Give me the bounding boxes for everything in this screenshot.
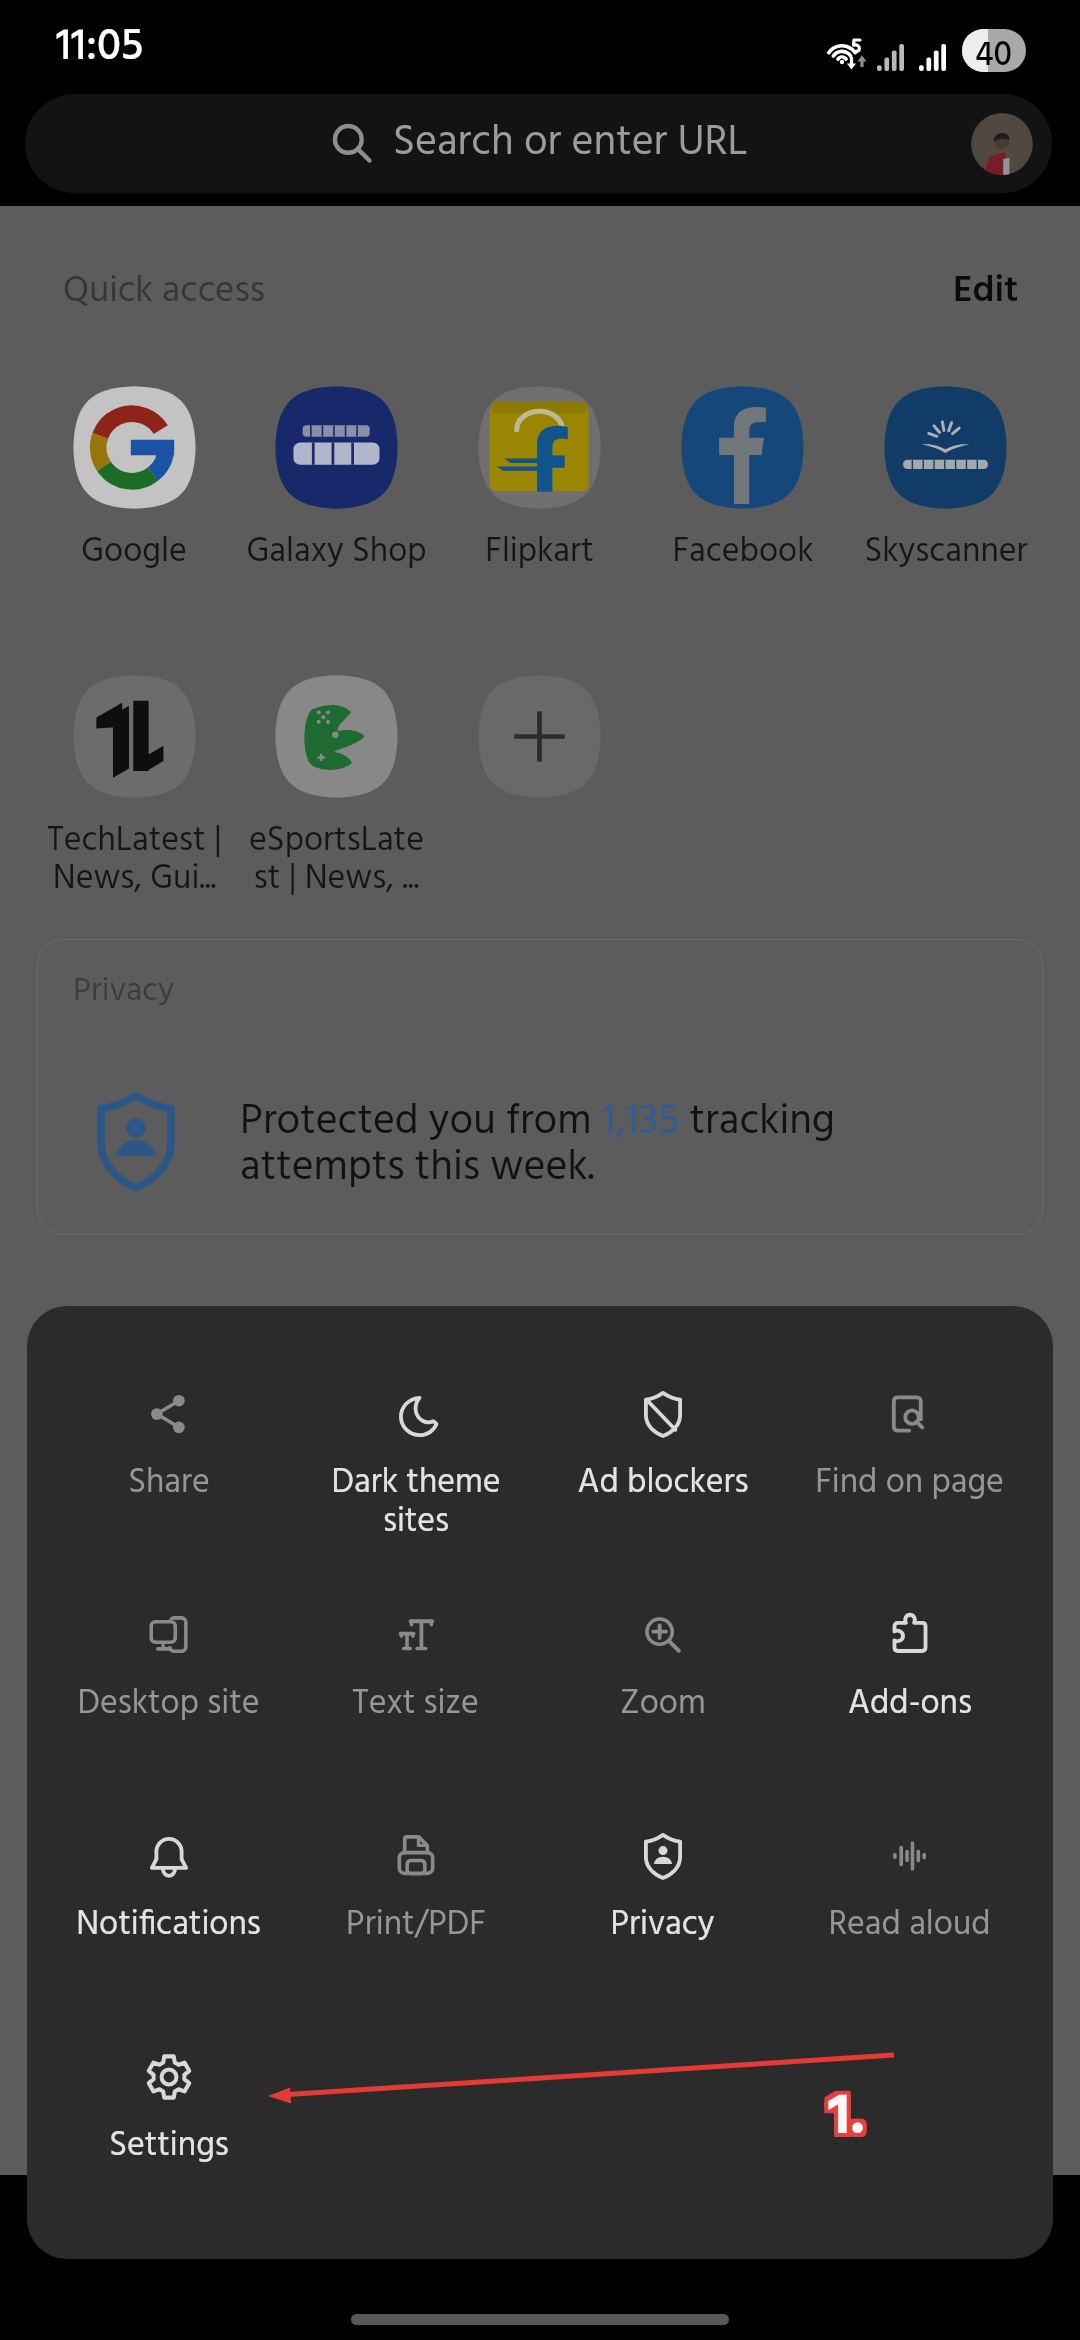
staticText: 1. — [832, 2070, 870, 2163]
staticText: Skyscanner — [864, 525, 1028, 579]
button[interactable] — [438, 675, 641, 868]
button[interactable]: Print/PDF — [292, 1829, 539, 1952]
button[interactable]: Settings — [45, 2050, 292, 2173]
staticText: Find on page — [815, 1456, 1004, 1510]
staticText: Galaxy Shop — [246, 525, 427, 579]
staticText: 40 — [975, 29, 1013, 72]
button[interactable]: Add-ons — [786, 1608, 1033, 1731]
button[interactable]: Read aloud — [786, 1829, 1033, 1952]
staticText: 1. — [832, 2072, 870, 2165]
staticText: Privacy — [610, 1898, 715, 1952]
button[interactable]: Privacy — [539, 1829, 786, 1952]
button[interactable]: Text size — [292, 1608, 539, 1731]
staticText: Flipkart — [485, 525, 594, 579]
staticText: Google — [81, 525, 187, 579]
staticText: Search or enter URL — [393, 110, 748, 177]
button[interactable]: Zoom — [539, 1608, 786, 1731]
button[interactable]: Desktop site — [45, 1608, 292, 1731]
button[interactable]: Galaxy Shop — [235, 386, 438, 579]
staticText: Zoom — [620, 1677, 706, 1731]
staticText: Facebook — [672, 525, 814, 579]
staticText: 1. — [828, 2072, 866, 2165]
staticText: 1. — [828, 2074, 866, 2167]
button[interactable]: Privacy — [37, 939, 1043, 1235]
button[interactable]: Dark theme sites — [292, 1387, 539, 1549]
staticText: 1. — [830, 2074, 868, 2167]
staticText: 1. — [830, 2072, 868, 2165]
staticText: 1. — [828, 2068, 866, 2161]
staticText: Desktop site — [77, 1677, 260, 1731]
button[interactable]: Edit — [953, 262, 1019, 321]
staticText: 1. — [830, 2068, 868, 2161]
staticText: Dark theme sites — [331, 1456, 501, 1549]
staticText: Privacy — [73, 965, 175, 1018]
staticText: 11:05 — [56, 13, 144, 83]
staticText: Read aloud — [828, 1898, 991, 1952]
staticText: 1. — [824, 2070, 862, 2163]
staticText: 1. — [832, 2076, 870, 2169]
staticText: Print/PDF — [346, 1898, 486, 1952]
button[interactable]: Flipkart — [438, 386, 641, 579]
button[interactable]: Search or enter URL — [25, 94, 1052, 193]
staticText: Quick access — [63, 262, 265, 321]
staticText: 1. — [824, 2072, 862, 2165]
staticText: Add-ons — [848, 1677, 972, 1731]
staticText: 1. — [826, 2070, 864, 2163]
staticText: 1. — [828, 2070, 866, 2163]
button[interactable]: Find on page — [786, 1387, 1033, 1510]
staticText: 1. — [828, 2076, 866, 2169]
staticText: Settings — [109, 2119, 229, 2173]
staticText: Protected you from 1,135 tracking attemp… — [240, 1089, 835, 1202]
button[interactable]: Google — [33, 386, 235, 579]
staticText: 1. — [830, 2070, 868, 2163]
staticText: 1. — [824, 2076, 862, 2169]
staticText: eSportsLate st | News, ... — [249, 814, 424, 907]
staticText: TechLatest | News, Gui... — [47, 814, 222, 907]
staticText: 1. — [826, 2072, 864, 2165]
button[interactable]: eSportsLate st | News, ... — [235, 675, 438, 907]
button[interactable]: Facebook — [641, 386, 844, 579]
staticText: Notifications — [76, 1898, 261, 1952]
staticText: 1. — [826, 2076, 864, 2169]
staticText: 1. — [824, 2074, 862, 2167]
staticText: 1. — [832, 2068, 870, 2161]
button[interactable]: Share — [45, 1387, 292, 1510]
staticText: 1. — [832, 2074, 870, 2167]
staticText: Share — [128, 1456, 210, 1510]
staticText: 1. — [826, 2068, 864, 2161]
staticText: 1. — [826, 2074, 864, 2167]
staticText: 1. — [830, 2076, 868, 2169]
button[interactable]: Ad blockers — [539, 1387, 786, 1510]
staticText: Ad blockers — [577, 1456, 749, 1510]
button[interactable]: Skyscanner — [844, 386, 1047, 579]
staticText: 1. — [824, 2068, 862, 2161]
button[interactable]: Profile — [971, 113, 1033, 175]
button[interactable]: Notifications — [45, 1829, 292, 1952]
staticText: Text size — [352, 1677, 479, 1731]
button[interactable]: TechLatest | News, Gui... — [33, 675, 235, 907]
